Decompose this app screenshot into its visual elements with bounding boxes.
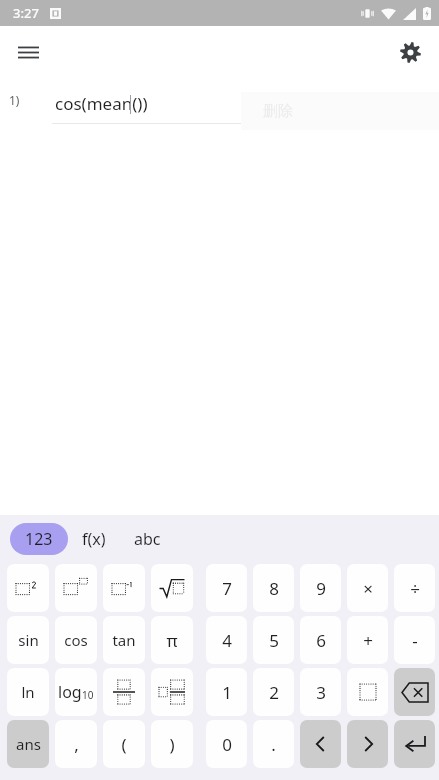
staticText: sin bbox=[18, 630, 39, 650]
staticText: 123 bbox=[25, 528, 53, 550]
staticText: 9 bbox=[316, 577, 326, 600]
button[interactable]: ln bbox=[7, 668, 49, 716]
button[interactable]: abc bbox=[120, 523, 175, 555]
button[interactable]: Square bbox=[7, 564, 49, 612]
staticText: , bbox=[74, 733, 79, 756]
button[interactable]: Power bbox=[55, 564, 97, 612]
button[interactable]: Open navigation menu bbox=[10, 34, 46, 70]
staticText: 删除 bbox=[263, 102, 293, 121]
staticText: ans bbox=[16, 734, 41, 754]
button[interactable]: sin bbox=[7, 616, 49, 664]
button[interactable]: 6 bbox=[300, 616, 341, 664]
button[interactable]: ÷ bbox=[394, 564, 435, 612]
button[interactable]: 2 bbox=[253, 668, 294, 716]
button[interactable]: 8 bbox=[253, 564, 294, 612]
staticText: abc bbox=[134, 528, 161, 550]
staticText: 2 bbox=[269, 681, 279, 704]
staticText: 8 bbox=[269, 577, 279, 600]
staticText: - bbox=[412, 629, 418, 652]
button[interactable]: Placeholder bbox=[347, 668, 388, 716]
button[interactable]: Mixed number bbox=[151, 668, 193, 716]
button[interactable]: Fraction bbox=[103, 668, 145, 716]
staticText: cos(mean()) bbox=[55, 92, 148, 115]
button[interactable]: cos bbox=[55, 616, 97, 664]
button[interactable]: Move left bbox=[300, 720, 341, 768]
button[interactable]: Enter bbox=[394, 720, 435, 768]
button[interactable]: 5 bbox=[253, 616, 294, 664]
button[interactable]: 7 bbox=[206, 564, 247, 612]
button[interactable]: - bbox=[394, 616, 435, 664]
button[interactable]: Inverse bbox=[103, 564, 145, 612]
button[interactable]: 9 bbox=[300, 564, 341, 612]
button[interactable]: 0 bbox=[206, 720, 247, 768]
staticText: cos bbox=[64, 630, 88, 650]
button[interactable]: , bbox=[55, 720, 97, 768]
button[interactable]: f(x) bbox=[68, 523, 120, 555]
staticText: + bbox=[363, 629, 373, 652]
button[interactable]: Move right bbox=[347, 720, 388, 768]
staticText: 10 bbox=[82, 688, 94, 702]
button[interactable]: π bbox=[151, 616, 193, 664]
button[interactable]: 3 bbox=[300, 668, 341, 716]
button[interactable]: + bbox=[347, 616, 388, 664]
staticText: ( bbox=[121, 733, 127, 756]
button[interactable]: Settings bbox=[391, 33, 429, 71]
staticText: 3:27 bbox=[13, 4, 39, 22]
staticText: × bbox=[363, 577, 373, 600]
button[interactable]: ( bbox=[103, 720, 145, 768]
staticText: ln bbox=[21, 682, 35, 702]
button[interactable]: 4 bbox=[206, 616, 247, 664]
button[interactable]: log bbox=[55, 668, 97, 716]
staticText: 7 bbox=[222, 577, 232, 600]
button[interactable]: Backspace bbox=[394, 668, 435, 716]
button[interactable]: 1) bbox=[0, 78, 439, 130]
button[interactable]: 123 bbox=[10, 523, 68, 555]
staticText: 4 bbox=[222, 629, 232, 652]
button[interactable]: tan bbox=[103, 616, 145, 664]
staticText: ) bbox=[169, 733, 175, 756]
staticText: 5 bbox=[269, 629, 279, 652]
staticText: . bbox=[271, 733, 276, 756]
button[interactable]: 1 bbox=[206, 668, 247, 716]
staticText: 0 bbox=[222, 733, 232, 756]
staticText: f(x) bbox=[82, 528, 106, 550]
staticText: 1 bbox=[222, 681, 232, 704]
button[interactable]: . bbox=[253, 720, 294, 768]
staticText: log bbox=[58, 681, 82, 703]
button[interactable]: ans bbox=[7, 720, 49, 768]
staticText: ÷ bbox=[410, 577, 420, 600]
button[interactable]: × bbox=[347, 564, 388, 612]
staticText: tan bbox=[112, 630, 136, 650]
staticText: 3 bbox=[316, 681, 326, 704]
button[interactable]: ) bbox=[151, 720, 193, 768]
staticText: 6 bbox=[316, 629, 326, 652]
staticText: 1) bbox=[9, 92, 20, 108]
button[interactable]: Square root bbox=[151, 564, 193, 612]
staticText: π bbox=[166, 629, 178, 652]
